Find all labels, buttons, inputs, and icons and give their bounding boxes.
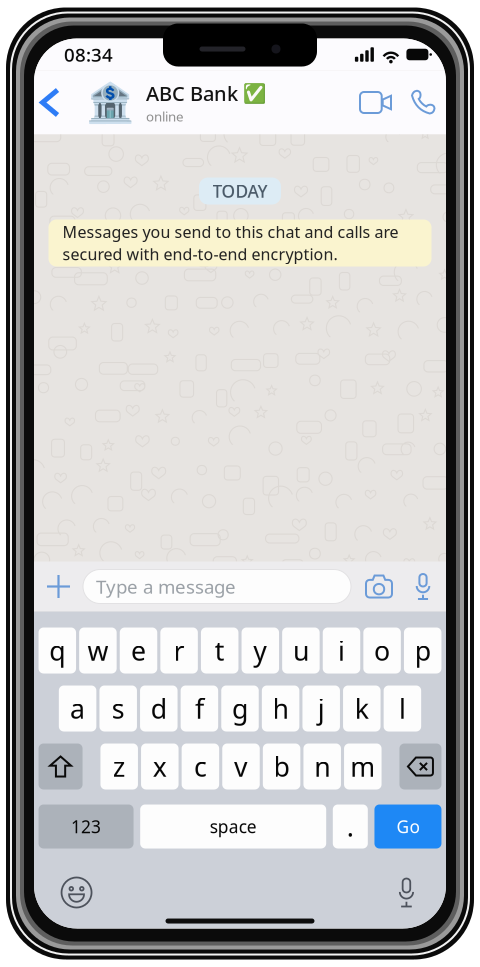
staticText: q xyxy=(49,633,65,668)
button[interactable]: r xyxy=(160,627,198,673)
staticText: h xyxy=(273,691,289,726)
button[interactable]: Type a message xyxy=(83,569,351,603)
staticText: 123 xyxy=(71,815,101,838)
staticText: i xyxy=(338,633,345,668)
staticText: g xyxy=(232,691,248,726)
button[interactable]: Go xyxy=(374,804,441,848)
staticText: o xyxy=(374,633,390,668)
staticText: Messages you send to this chat and calls… xyxy=(62,221,398,242)
button[interactable]: . xyxy=(333,804,368,848)
button[interactable]: p xyxy=(404,627,441,673)
staticText: ABC Bank xyxy=(146,80,238,106)
button[interactable]: e xyxy=(120,627,157,673)
staticText: space xyxy=(210,815,257,838)
staticText: . xyxy=(347,809,354,844)
button[interactable]: g xyxy=(221,685,259,731)
button[interactable]: l xyxy=(384,685,421,731)
staticText: x xyxy=(153,749,167,784)
button[interactable]: j xyxy=(302,685,340,731)
button[interactable]: d xyxy=(140,685,178,731)
staticText: t xyxy=(215,633,225,668)
button[interactable]: b xyxy=(263,743,300,789)
staticText: Type a message xyxy=(96,574,236,599)
staticText: y xyxy=(253,633,267,668)
staticText: l xyxy=(399,691,406,726)
staticText: s xyxy=(112,691,125,726)
staticText: j xyxy=(318,691,325,726)
button[interactable]: s xyxy=(99,685,137,731)
button[interactable]: 🏦 xyxy=(66,70,326,134)
button[interactable]: Shift xyxy=(39,743,83,789)
button[interactable]: Voice message xyxy=(403,561,443,611)
button[interactable]: o xyxy=(363,627,401,673)
staticText: secured with end-to-end encryption. xyxy=(62,243,337,265)
button[interactable]: w xyxy=(79,627,117,673)
button[interactable]: u xyxy=(282,627,320,673)
staticText: u xyxy=(293,633,309,668)
button[interactable]: z xyxy=(100,743,138,789)
button[interactable]: n xyxy=(303,743,341,789)
staticText: ✅ xyxy=(243,82,266,104)
staticText: 08:34 xyxy=(64,42,113,67)
button[interactable]: m xyxy=(344,743,381,789)
button[interactable]: v xyxy=(222,743,260,789)
staticText: m xyxy=(350,749,375,784)
button[interactable]: h xyxy=(262,685,299,731)
button[interactable]: t xyxy=(201,627,238,673)
staticText: Go xyxy=(396,815,419,838)
staticText: z xyxy=(113,749,126,784)
staticText: n xyxy=(314,749,330,784)
staticText: online xyxy=(146,107,184,125)
staticText: k xyxy=(355,691,369,726)
staticText: w xyxy=(87,633,108,668)
staticText: d xyxy=(151,691,167,726)
button[interactable]: Voice call xyxy=(400,70,446,134)
button[interactable]: q xyxy=(39,627,76,673)
button[interactable]: i xyxy=(323,627,360,673)
button[interactable]: Dictate xyxy=(386,870,426,914)
button[interactable]: Back xyxy=(34,70,66,134)
staticText: TODAY xyxy=(212,179,267,202)
button[interactable]: Delete xyxy=(399,743,441,789)
staticText: p xyxy=(415,633,431,668)
staticText: c xyxy=(194,749,207,784)
staticText: f xyxy=(195,691,204,726)
button[interactable]: x xyxy=(141,743,178,789)
button[interactable]: f xyxy=(181,685,218,731)
staticText: a xyxy=(70,691,85,726)
button[interactable]: y xyxy=(242,627,279,673)
staticText: r xyxy=(174,633,185,668)
button[interactable]: Video call xyxy=(351,70,400,134)
staticText: e xyxy=(131,633,146,668)
button[interactable]: Camera xyxy=(355,561,403,611)
button[interactable]: Attach xyxy=(34,561,83,611)
button[interactable]: Emoji xyxy=(49,870,105,914)
button[interactable]: c xyxy=(182,743,219,789)
button[interactable]: k xyxy=(343,685,380,731)
button[interactable]: space xyxy=(140,804,326,848)
button[interactable]: 123 xyxy=(39,804,134,848)
staticText: b xyxy=(274,749,290,784)
staticText: 🏦 xyxy=(85,80,133,125)
staticText: v xyxy=(234,749,248,784)
button[interactable]: a xyxy=(59,685,96,731)
